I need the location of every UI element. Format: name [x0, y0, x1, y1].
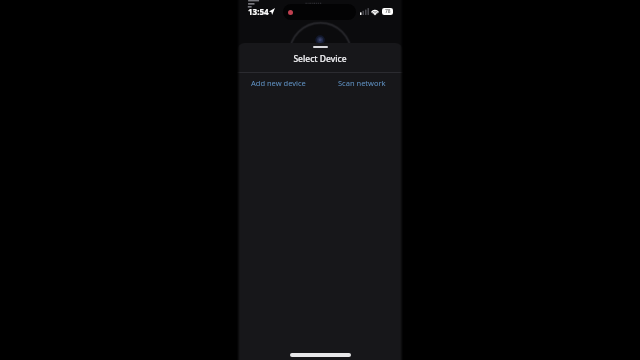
button[interactable]: Drag handle	[237, 43, 403, 48]
staticText: Select Device	[293, 53, 347, 65]
button[interactable]: Scan network	[320, 73, 403, 93]
staticText: Scan network	[338, 78, 386, 88]
button[interactable]: Add new device	[237, 73, 320, 93]
staticText: 78	[385, 8, 391, 15]
staticText: 13:54	[248, 6, 269, 17]
staticText: Add new device	[251, 78, 306, 88]
